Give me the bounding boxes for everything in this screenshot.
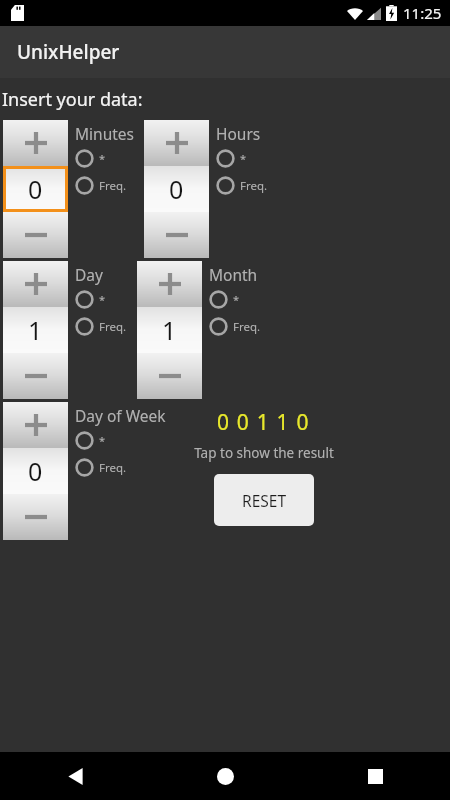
button[interactable]: 0 <box>144 166 209 212</box>
staticText: Freq. <box>99 319 127 335</box>
staticText: 0 <box>169 172 184 206</box>
button[interactable]: Decrement <box>3 494 68 540</box>
button[interactable]: Decrement <box>3 212 68 258</box>
button[interactable]: * <box>75 149 106 168</box>
button[interactable]: Increment <box>3 120 68 166</box>
staticText: Insert your data: <box>2 87 143 112</box>
button[interactable]: Increment <box>3 402 68 448</box>
button[interactable]: Freq. <box>209 317 261 336</box>
staticText: 1 <box>162 313 177 347</box>
staticText: Freq. <box>240 178 268 194</box>
staticText: 11:25 <box>403 3 442 23</box>
staticText: Day of Week <box>75 405 166 426</box>
button[interactable]: Recents <box>300 752 450 800</box>
button[interactable]: * <box>209 290 240 309</box>
button[interactable]: 1 <box>3 307 68 353</box>
button[interactable]: RESET <box>214 474 314 526</box>
staticText: RESET <box>242 490 287 511</box>
button[interactable]: Back <box>0 752 150 800</box>
staticText: 0 0 1 1 0 <box>217 408 310 437</box>
staticText: Minutes <box>75 123 134 144</box>
button[interactable]: 1 <box>137 307 202 353</box>
button[interactable]: Freq. <box>75 176 127 195</box>
staticText: 0 <box>28 172 43 206</box>
button[interactable]: Decrement <box>144 212 209 258</box>
staticText: UnixHelper <box>17 39 120 65</box>
staticText: * <box>99 433 106 448</box>
button[interactable]: 0 <box>3 448 68 494</box>
button[interactable]: Freq. <box>75 317 127 336</box>
button[interactable]: Decrement <box>3 353 68 399</box>
button[interactable]: Increment <box>137 261 202 307</box>
button[interactable]: 0 <box>3 166 68 212</box>
button[interactable]: * <box>216 149 247 168</box>
staticText: * <box>233 292 240 307</box>
staticText: Hours <box>216 123 261 144</box>
staticText: * <box>99 292 106 307</box>
staticText: Day <box>75 264 103 285</box>
staticText: * <box>99 151 106 166</box>
button[interactable]: Freq. <box>216 176 268 195</box>
button[interactable]: * <box>75 290 106 309</box>
staticText: Freq. <box>233 319 261 335</box>
button[interactable]: Increment <box>3 261 68 307</box>
staticText: 1 <box>28 313 43 347</box>
staticText: Tap to show the result <box>194 444 334 462</box>
button[interactable]: Freq. <box>75 458 127 477</box>
button[interactable]: * <box>75 431 106 450</box>
staticText: * <box>240 151 247 166</box>
button[interactable]: Increment <box>144 120 209 166</box>
button[interactable]: Tap to show the result <box>194 444 334 462</box>
staticText: Freq. <box>99 460 127 476</box>
button[interactable]: Decrement <box>137 353 202 399</box>
staticText: Freq. <box>99 178 127 194</box>
button[interactable]: Home <box>150 752 300 800</box>
staticText: Month <box>209 264 258 285</box>
staticText: 0 <box>28 454 43 488</box>
